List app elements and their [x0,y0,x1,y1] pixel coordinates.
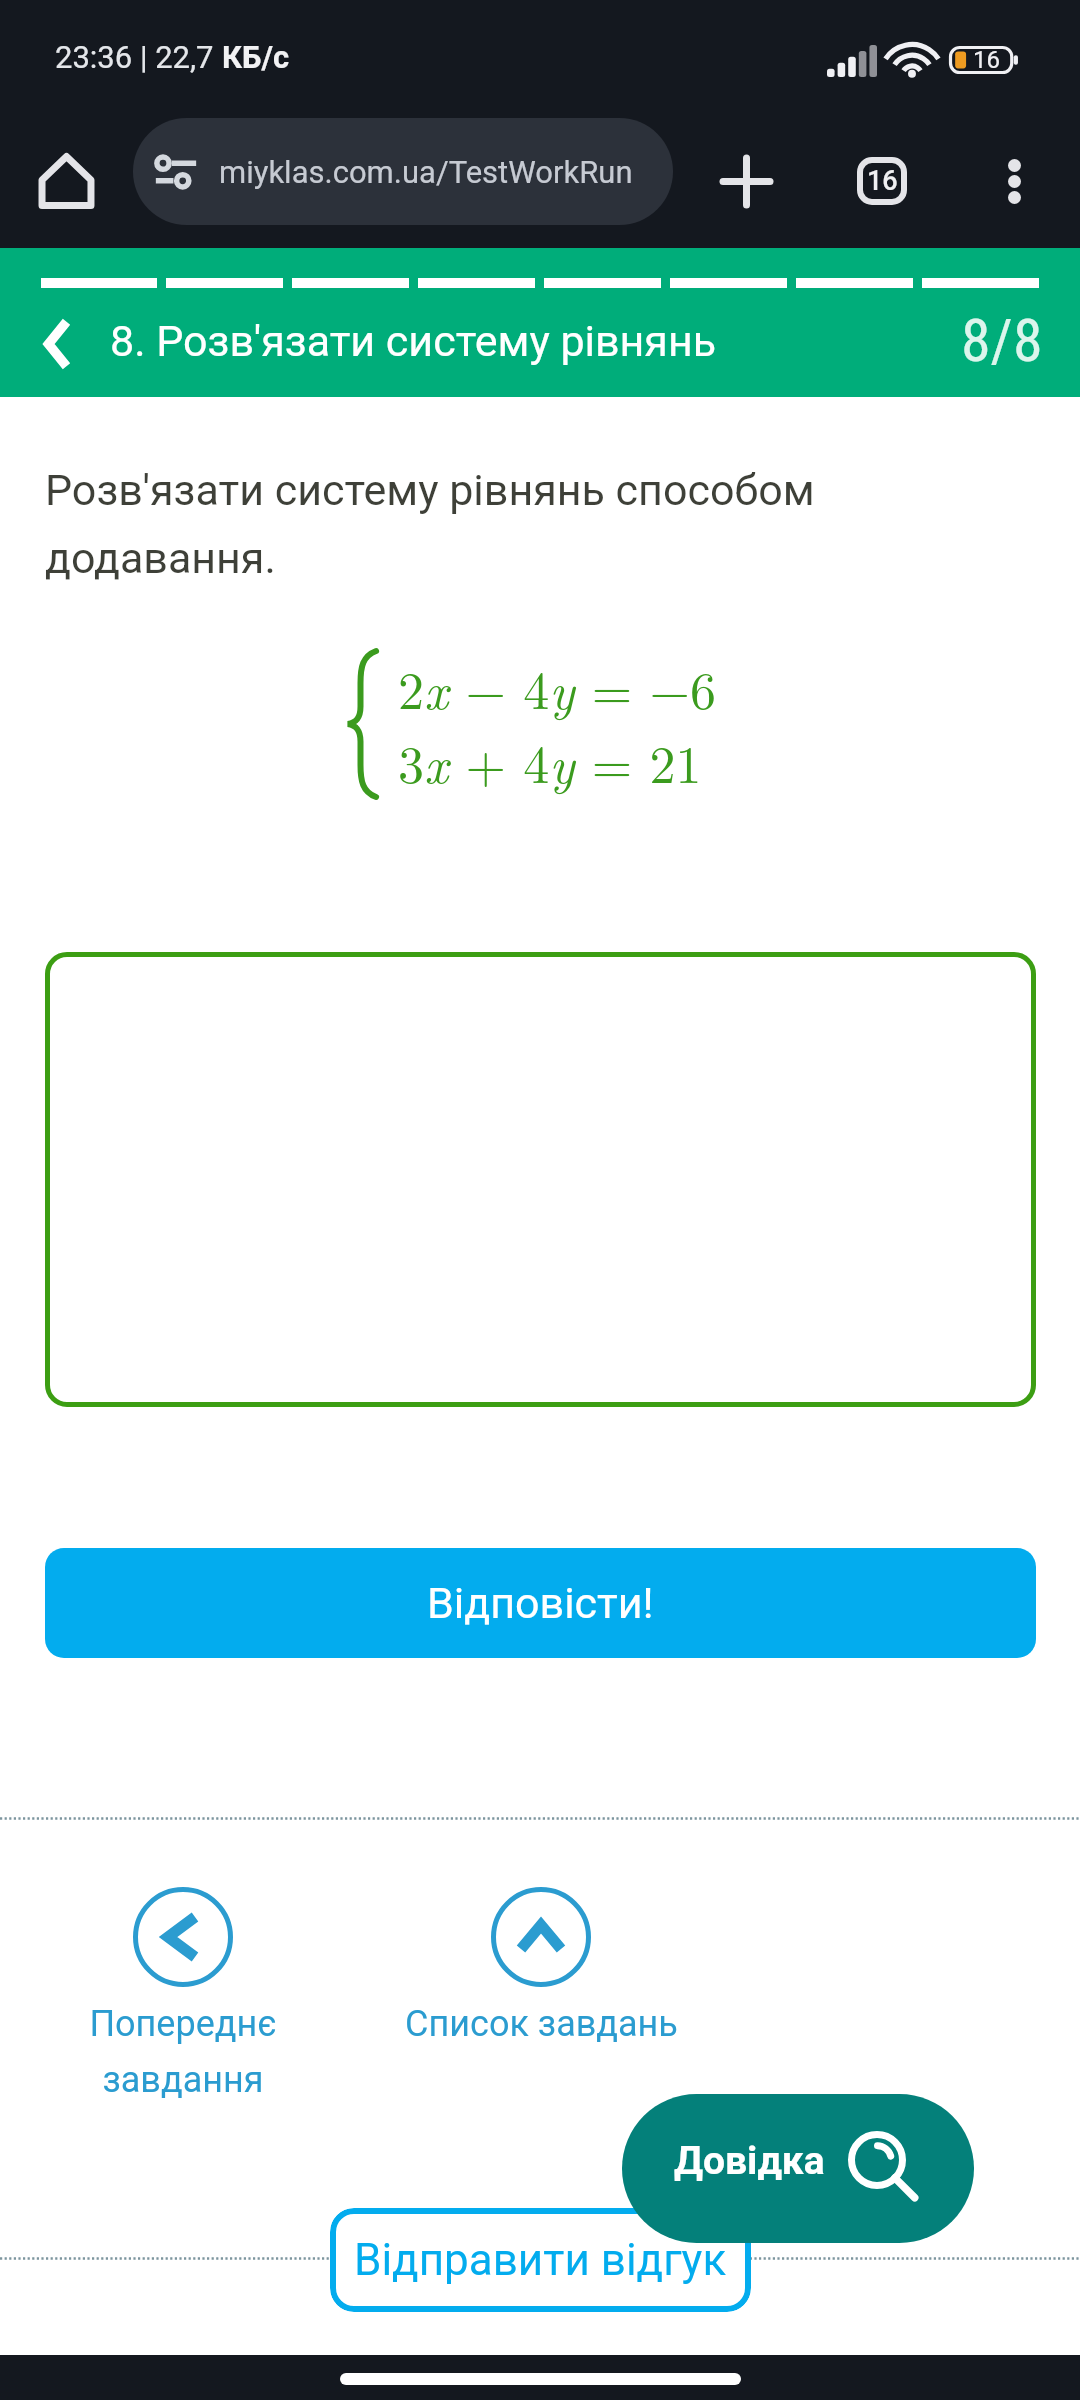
button[interactable]: Відповісти! [45,1548,1036,1658]
staticText: КБ/с [222,39,290,75]
button[interactable]: New tab [706,126,786,236]
staticText: 16 [973,46,1000,74]
button[interactable] [45,952,1036,1407]
staticText: 8. Розв'язати систему рівнянь [110,316,717,366]
staticText: Розв'язати систему рівнянь способом дода… [45,465,925,583]
button[interactable]: Довідка [622,2094,974,2243]
button[interactable]: Back [25,305,87,383]
staticText: 2x − 4y = −6 [398,650,717,724]
staticText: miyklas.com.ua/TestWorkRun [219,154,633,190]
button[interactable]: miyklas.com.ua/TestWorkRun [133,118,673,225]
staticText: Довідка [674,2138,825,2184]
button[interactable]: Відправити відгук [330,2208,751,2312]
button[interactable]: Home [26,126,106,236]
button[interactable]: Попереднє завдання [53,1887,313,2100]
staticText: 8/8 [961,305,1043,375]
staticText: 16 [867,165,898,197]
staticText: 3x + 4y = 21 [398,724,702,798]
staticText: Попереднє завдання [89,2003,277,2100]
staticText: Список завдань [405,2003,678,2045]
button[interactable]: Tabs [842,126,922,236]
staticText: Відправити відгук [354,2234,727,2286]
staticText: Відповісти! [427,1578,654,1628]
button[interactable]: More options [974,126,1054,236]
staticText: 23:36 | 22,7 [55,39,222,75]
button[interactable]: Список завдань [371,1887,711,2045]
